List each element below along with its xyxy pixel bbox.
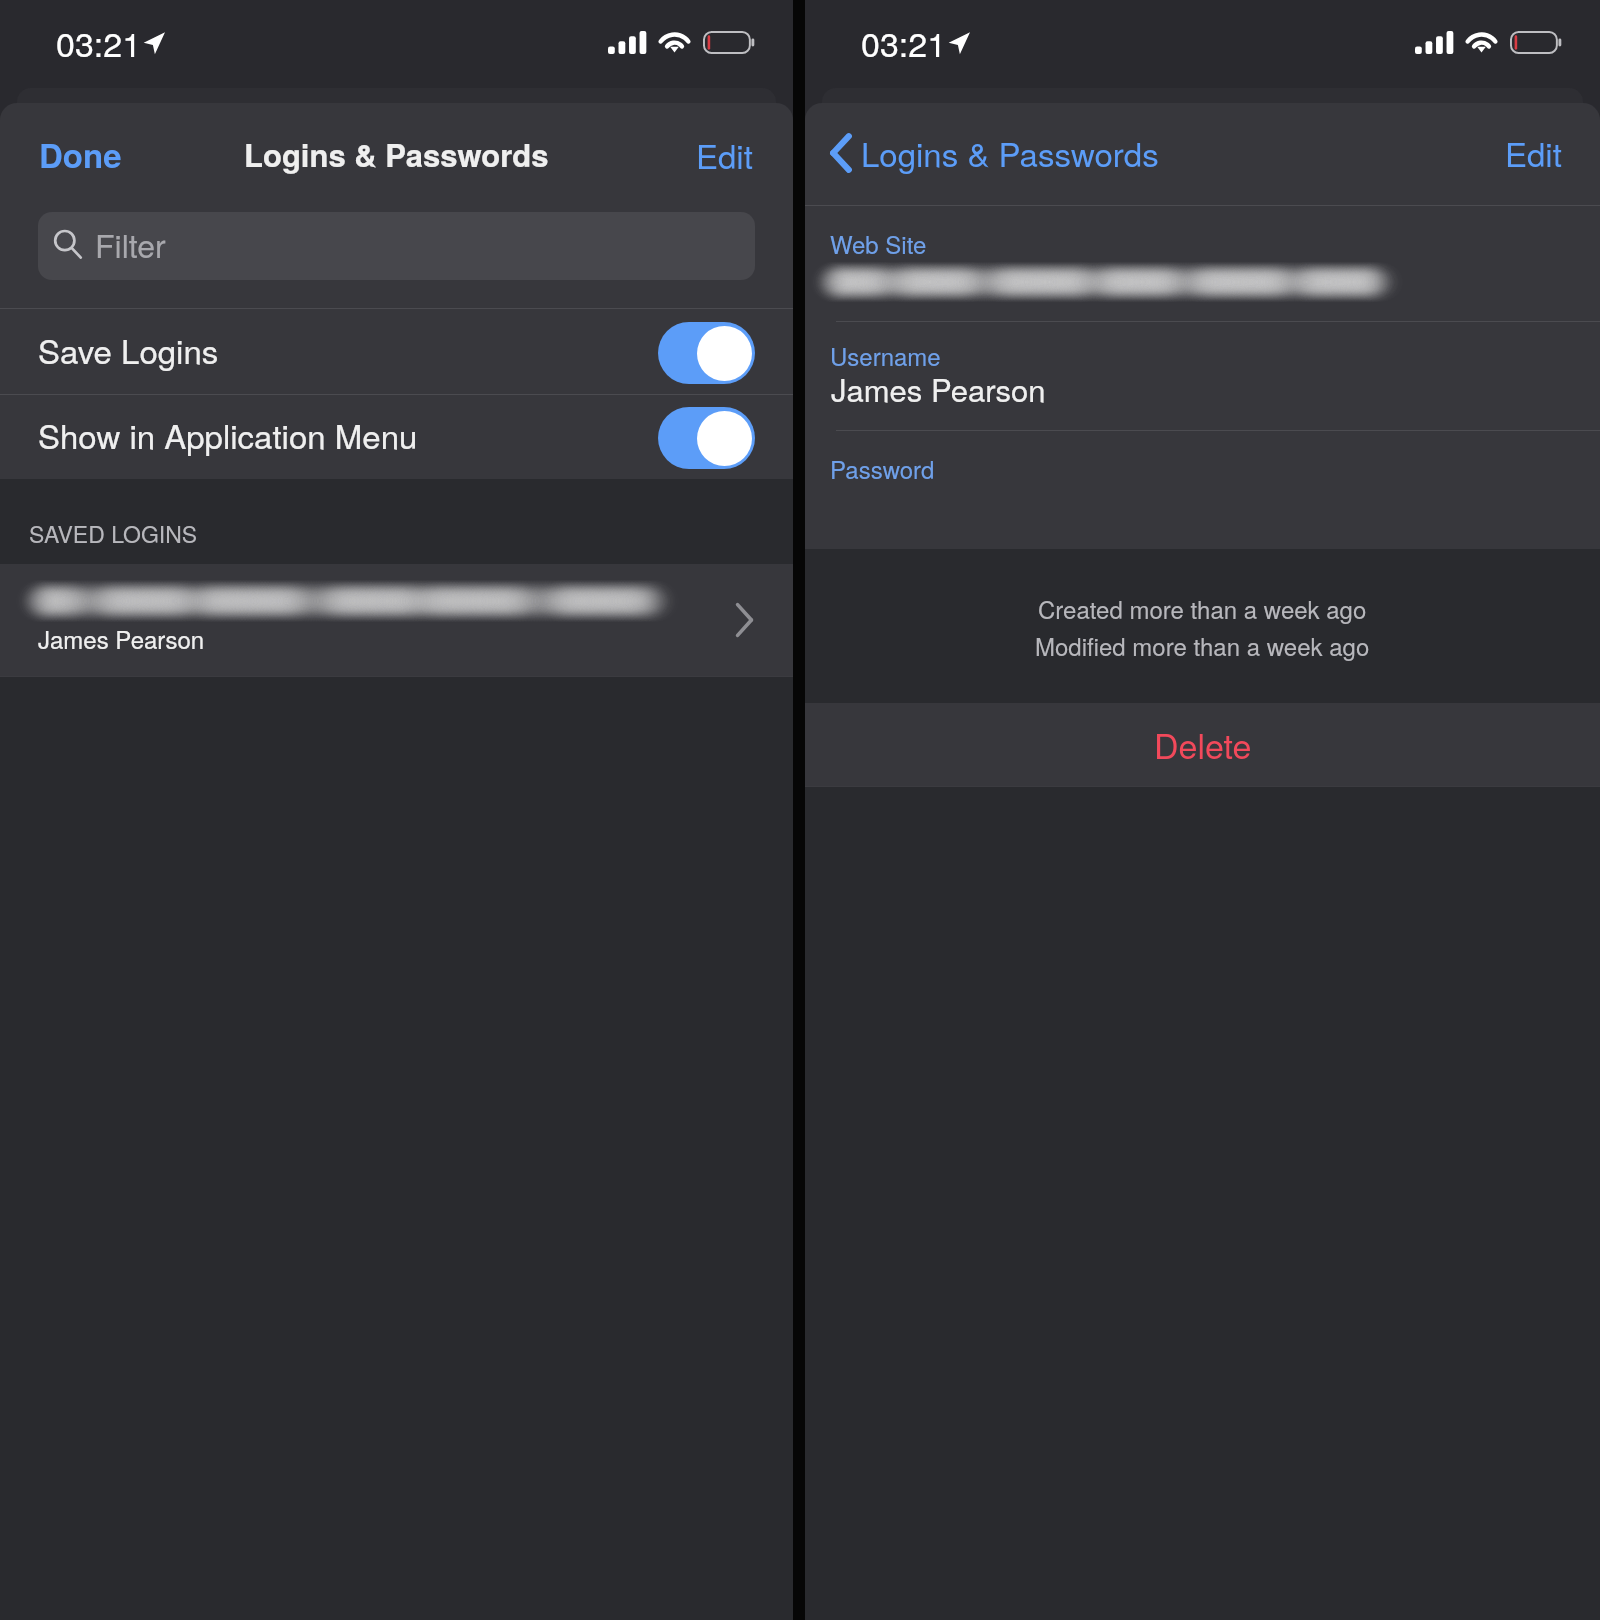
button[interactable] <box>658 407 755 469</box>
button[interactable]: Edit <box>682 113 767 196</box>
button[interactable]: Done <box>25 113 136 196</box>
staticText: Web Site <box>830 226 927 260</box>
staticText: James Pearson <box>831 366 1046 410</box>
button[interactable]: Username <box>805 322 1600 430</box>
staticText: Username <box>830 338 941 372</box>
staticText: SAVED LOGINS <box>29 517 198 550</box>
staticText: Created more than a week ago <box>1038 591 1367 625</box>
button[interactable]: Back <box>827 115 1159 190</box>
button[interactable]: Web Site <box>805 206 1600 321</box>
button[interactable]: Delete <box>805 703 1600 786</box>
other: Open login details <box>734 601 755 639</box>
staticText: Filter <box>95 221 166 267</box>
other: Back <box>827 130 855 176</box>
button[interactable]: Edit <box>1491 111 1576 194</box>
button[interactable]: Save Logins <box>0 309 793 394</box>
staticText: Logins & Passwords <box>861 129 1159 176</box>
staticText: Password <box>830 451 935 485</box>
button[interactable] <box>658 322 755 384</box>
staticText: 03:21 <box>56 18 142 67</box>
staticText: Modified more than a week ago <box>1035 628 1370 662</box>
button[interactable]: James Pearson <box>0 564 793 676</box>
staticText: Done <box>39 131 122 178</box>
staticText: Show in Application Menu <box>38 411 418 458</box>
staticText: Delete <box>1154 720 1252 769</box>
button[interactable]: Password <box>805 431 1600 549</box>
staticText: Edit <box>1505 129 1562 176</box>
button[interactable]: Show in Application Menu <box>0 395 793 479</box>
staticText: Save Logins <box>38 326 219 373</box>
staticText: 03:21 <box>861 18 947 67</box>
button[interactable]: Search <box>38 212 755 280</box>
staticText: Edit <box>696 131 753 178</box>
other: Search <box>52 227 84 261</box>
staticText: James Pearson <box>38 621 205 655</box>
staticText: Logins & Passwords <box>244 132 549 176</box>
